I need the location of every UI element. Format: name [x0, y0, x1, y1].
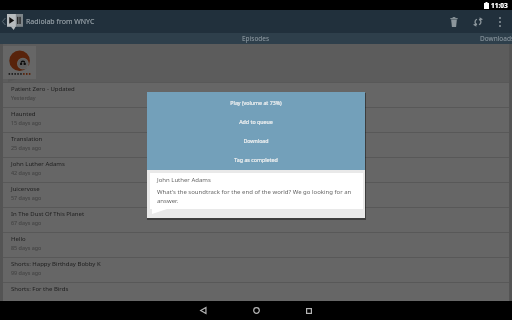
button[interactable]: Home [239, 301, 273, 320]
staticText: Episodes [242, 34, 270, 43]
button[interactable]: Tag as completed [147, 150, 365, 169]
staticText: 67 days ago [11, 219, 42, 226]
staticText: Patient Zero - Updated [11, 85, 75, 93]
staticText: Hello [11, 235, 26, 243]
button[interactable]: Play (volume at 73%) [147, 93, 365, 112]
button[interactable]: Shorts: For the Birds [3, 283, 509, 301]
staticText: Juicervose [11, 185, 40, 193]
button[interactable]: Back [186, 301, 220, 320]
staticText: Download [243, 137, 269, 144]
button[interactable]: Juicervose [3, 183, 509, 207]
staticText: What's the soundtrack for the end of the… [157, 188, 359, 205]
button[interactable]: Recent apps [292, 301, 326, 320]
staticText: 15 days ago [11, 119, 42, 126]
staticText: Haunted [11, 110, 36, 118]
staticText: Downloads [480, 34, 512, 43]
staticText: 11:03 [491, 1, 508, 10]
button[interactable]: In The Dust Of This Planet [3, 208, 509, 232]
button[interactable]: Download [147, 131, 365, 150]
staticText: John Luther Adams [157, 176, 211, 184]
button[interactable]: Navigate up [0, 10, 7, 33]
staticText: Shorts: For the Birds [11, 285, 69, 293]
staticText: Add to queue [239, 118, 273, 125]
staticText: Play (volume at 73%) [230, 99, 282, 106]
button[interactable]: More options [490, 10, 510, 33]
staticText: John Luther Adams [11, 160, 65, 168]
staticText: 57 days ago [11, 194, 42, 201]
staticText: Yesterday [11, 94, 36, 101]
staticText: Shorts: Happy Birthday Bobby K [11, 260, 101, 268]
button[interactable]: Refresh [466, 10, 490, 33]
staticText: 42 days ago [11, 169, 42, 176]
staticText: In The Dust Of This Planet [11, 210, 85, 218]
button[interactable]: Patient Zero - Updated [3, 83, 509, 107]
staticText: Translation [11, 135, 43, 143]
button[interactable]: Translation [3, 133, 509, 157]
staticText: 25 days ago [11, 144, 42, 151]
staticText: Radiolab from WNYC [26, 17, 95, 27]
staticText: 99 days ago [11, 269, 42, 276]
button[interactable]: John Luther Adams [3, 158, 509, 182]
staticText: 85 days ago [11, 244, 42, 251]
staticText: Tag as completed [234, 156, 278, 163]
button[interactable]: Delete [442, 10, 466, 33]
button[interactable]: Downloads [480, 34, 512, 43]
button[interactable]: Haunted [3, 108, 509, 132]
button[interactable]: Shorts: Happy Birthday Bobby K [3, 258, 509, 282]
button[interactable]: Add to queue [147, 112, 365, 131]
button[interactable]: Episodes [242, 34, 270, 43]
